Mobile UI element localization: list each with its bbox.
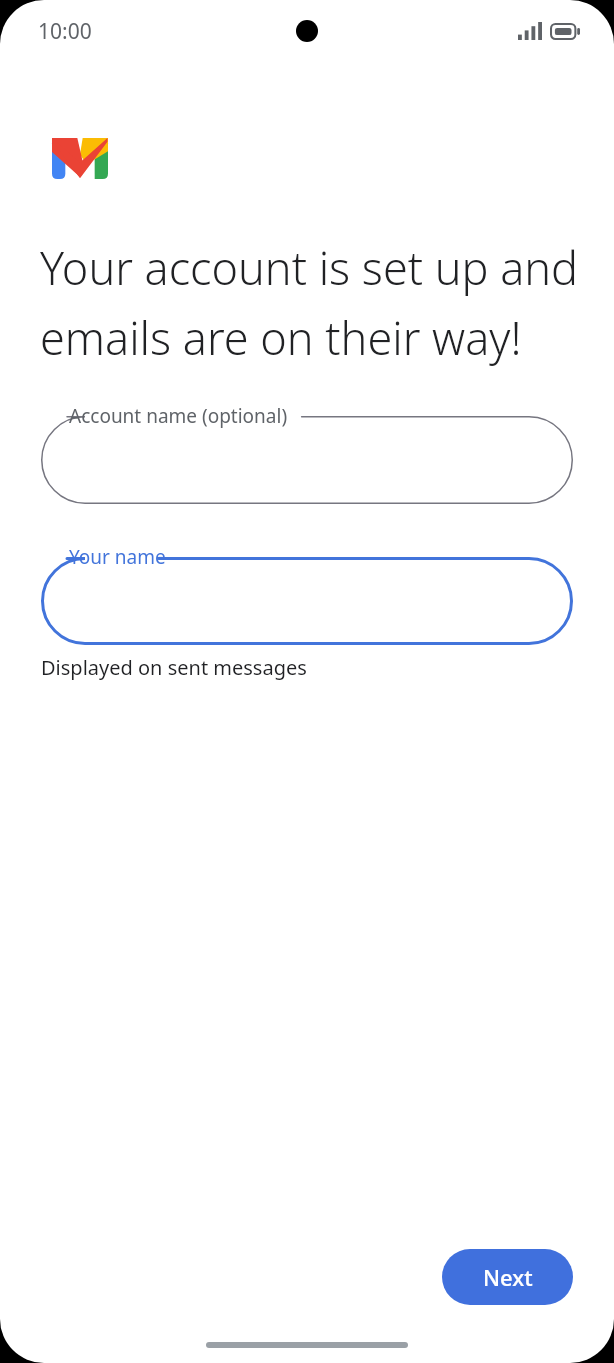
button[interactable]: Your name xyxy=(41,557,573,645)
other: Home gesture handle xyxy=(206,1342,408,1348)
staticText: Your account is set up and emails are on… xyxy=(40,237,580,368)
staticText: Your name xyxy=(69,544,166,570)
staticText: Account name (optional) xyxy=(69,403,288,429)
staticText: 10:00 xyxy=(38,17,92,46)
staticText: Next xyxy=(483,1262,533,1292)
button[interactable]: Next xyxy=(442,1249,573,1305)
button[interactable]: Account name (optional) xyxy=(41,416,573,504)
staticText: Displayed on sent messages xyxy=(41,654,307,681)
